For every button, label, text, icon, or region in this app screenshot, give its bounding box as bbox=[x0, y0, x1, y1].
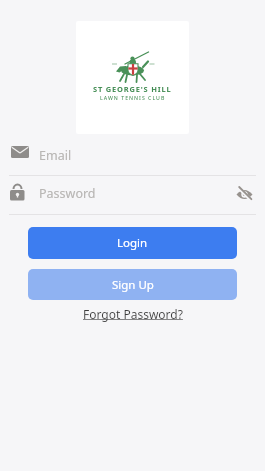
button[interactable]: Forgot Password? bbox=[83, 306, 183, 322]
button[interactable]: Password bbox=[0, 176, 265, 215]
staticText: LAWN TENNIS CLUB bbox=[100, 94, 166, 101]
staticText: Sign Up bbox=[112, 277, 154, 293]
button[interactable]: Sign Up bbox=[28, 269, 237, 300]
staticText: Password bbox=[39, 185, 96, 202]
staticText: Login bbox=[117, 235, 148, 251]
button[interactable] bbox=[236, 187, 253, 202]
button[interactable]: Login bbox=[28, 227, 237, 259]
button[interactable]: Email bbox=[0, 137, 265, 176]
staticText: ST GEORGE'S HILL bbox=[93, 84, 172, 94]
staticText: Email bbox=[39, 147, 72, 164]
